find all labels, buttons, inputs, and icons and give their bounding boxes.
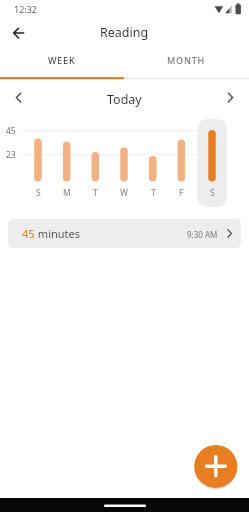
staticText: minutes: [35, 226, 81, 241]
staticText: T: [93, 187, 98, 199]
staticText: 45: [22, 226, 35, 241]
staticText: S: [210, 187, 215, 199]
staticText: WEEK: [48, 54, 76, 66]
staticText: T: [151, 187, 156, 199]
staticText: S: [36, 187, 41, 199]
staticText: 23: [6, 149, 16, 161]
staticText: 9:30 AM: [187, 229, 218, 240]
staticText: Reading: [100, 24, 149, 41]
staticText: 12:32: [14, 3, 38, 15]
staticText: M: [63, 187, 71, 199]
staticText: Today: [107, 91, 142, 108]
staticText: W: [120, 187, 128, 199]
staticText: MONTH: [167, 54, 206, 66]
staticText: 45: [6, 125, 16, 137]
staticText: F: [179, 187, 184, 199]
